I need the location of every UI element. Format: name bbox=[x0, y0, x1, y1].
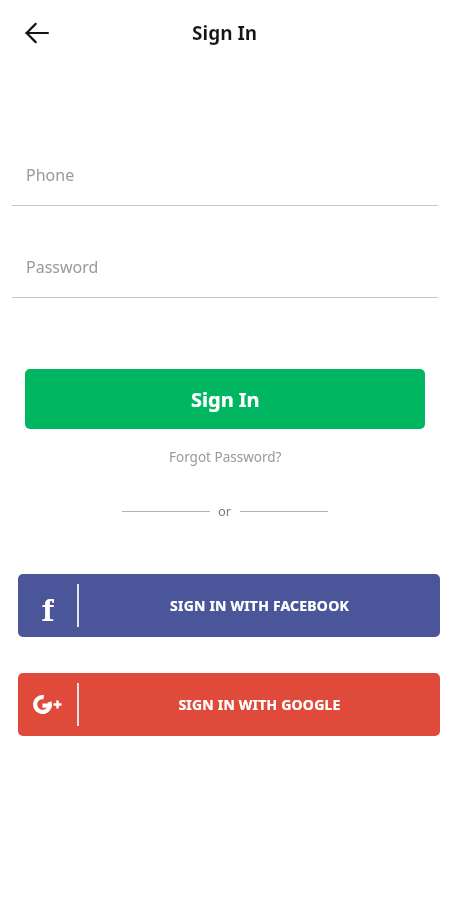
staticText: Sign In bbox=[191, 386, 260, 413]
staticText: Phone bbox=[26, 164, 75, 186]
staticText: SIGN IN WITH GOOGLE bbox=[178, 695, 341, 714]
staticText: SIGN IN WITH FACEBOOK bbox=[170, 596, 349, 615]
button[interactable]: SIGN IN WITH GOOGLE bbox=[18, 673, 440, 736]
button[interactable]: f bbox=[18, 574, 440, 637]
staticText: Forgot Password? bbox=[169, 448, 282, 466]
staticText: or bbox=[218, 502, 232, 520]
button[interactable]: Sign In bbox=[25, 369, 425, 429]
staticText: f bbox=[42, 590, 54, 622]
button[interactable]: Phone bbox=[0, 164, 450, 206]
staticText: Sign In bbox=[192, 20, 258, 46]
staticText: Password bbox=[26, 256, 99, 278]
button[interactable]: Back bbox=[14, 10, 60, 56]
button[interactable]: Password bbox=[0, 256, 450, 298]
button[interactable]: Forgot Password? bbox=[161, 445, 290, 469]
